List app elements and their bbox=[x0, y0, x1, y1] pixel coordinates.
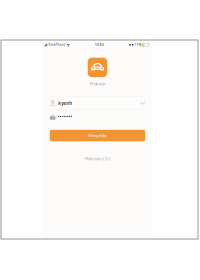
button[interactable]: kyanh bbox=[50, 97, 145, 110]
button[interactable] bbox=[50, 110, 145, 123]
button[interactable]: Đăng nhập bbox=[50, 130, 145, 141]
staticText: VinaPhone bbox=[49, 43, 66, 47]
staticText: 13:53 bbox=[95, 43, 104, 47]
staticText: Phiên bản 2.3.5 bbox=[85, 156, 110, 161]
staticText: Protrack bbox=[90, 81, 105, 86]
staticText: Đăng nhập bbox=[88, 133, 106, 138]
staticText: 17% bbox=[135, 43, 141, 47]
staticText: kyanh bbox=[58, 100, 72, 106]
